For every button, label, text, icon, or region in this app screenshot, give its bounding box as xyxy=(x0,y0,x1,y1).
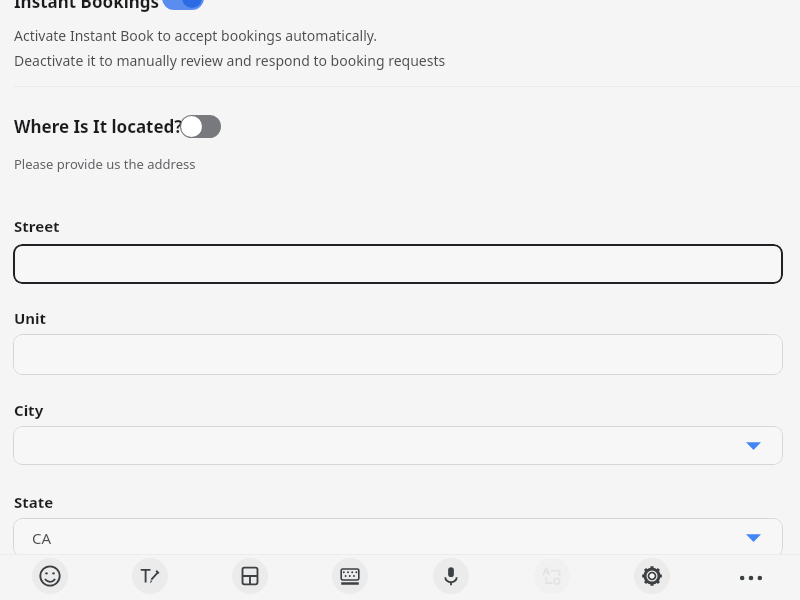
staticText: Unit xyxy=(14,308,47,328)
button[interactable]: Keyboard settings xyxy=(634,558,670,594)
button[interactable]: GIF keyboard xyxy=(332,558,368,594)
button[interactable]: Unit field xyxy=(13,334,783,375)
staticText: Please provide us the address xyxy=(14,155,196,173)
button[interactable]: Instant Bookings toggle, on xyxy=(162,0,204,10)
button[interactable]: Voice input xyxy=(433,558,469,594)
button[interactable]: Clipboard xyxy=(232,558,268,594)
staticText: City xyxy=(14,400,44,420)
staticText: CA xyxy=(32,528,52,548)
button[interactable]: Translate xyxy=(534,558,570,594)
button[interactable]: Stickers and text editing xyxy=(132,558,168,594)
staticText: Street xyxy=(14,216,60,236)
button[interactable]: Instant Bookings xyxy=(14,0,160,13)
button[interactable]: Where is it located toggle, off xyxy=(180,115,221,138)
staticText: Where Is It located? xyxy=(14,115,183,138)
button[interactable]: Where Is It located? xyxy=(14,115,183,138)
button[interactable]: Emoji xyxy=(32,558,68,594)
button[interactable]: Street address field xyxy=(13,244,783,284)
staticText: State xyxy=(14,492,54,512)
button[interactable]: City dropdown xyxy=(13,426,783,465)
staticText: Deactivate it to manually review and res… xyxy=(14,51,446,70)
staticText: Instant Bookings xyxy=(14,0,160,13)
button[interactable]: State dropdown, CA xyxy=(13,518,783,557)
staticText: Activate Instant Book to accept bookings… xyxy=(14,26,378,45)
button[interactable]: More options xyxy=(731,558,769,596)
